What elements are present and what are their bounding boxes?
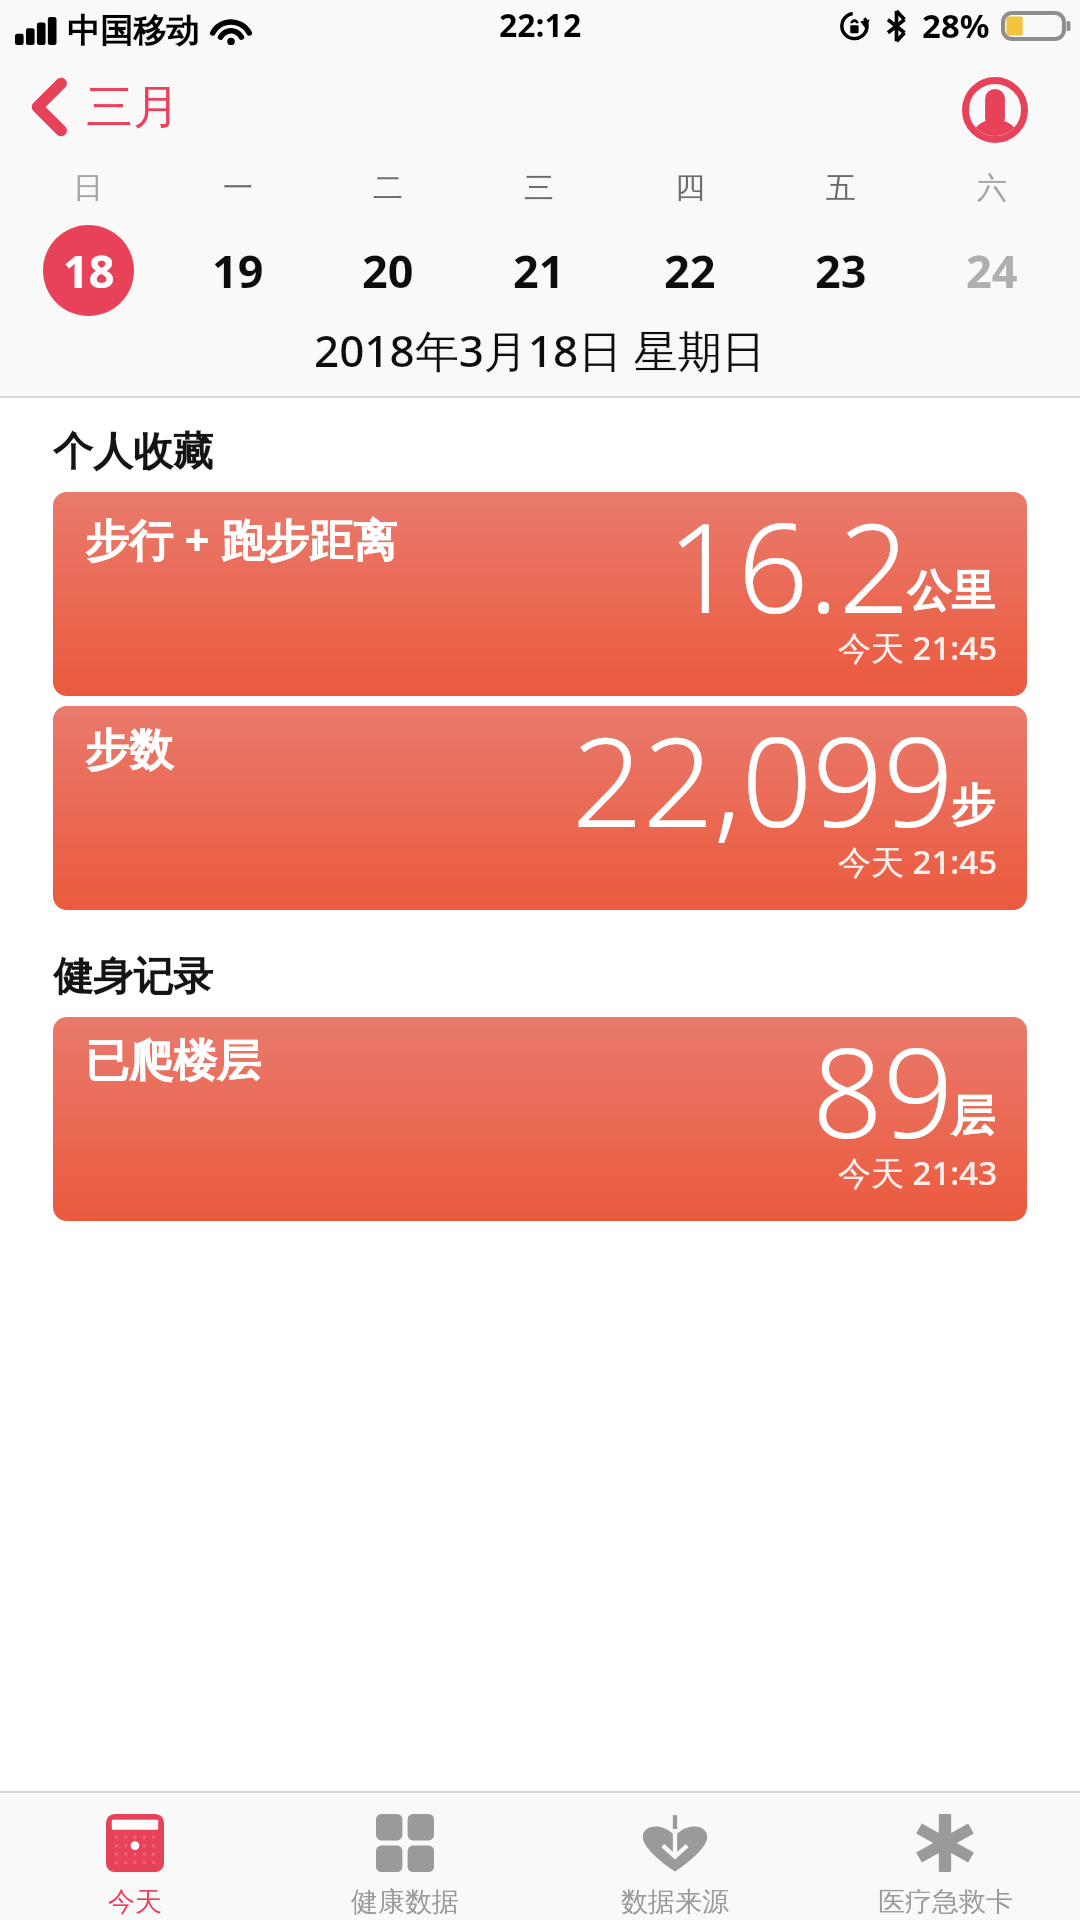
button[interactable]: 数据来源 <box>540 1793 810 1920</box>
button[interactable]: 21 <box>463 222 614 318</box>
staticText: 22 <box>664 240 716 301</box>
button[interactable]: 20 <box>313 222 463 318</box>
staticText: 89 <box>812 1017 954 1174</box>
staticText: 日 <box>73 169 103 207</box>
button[interactable]: 个人资料 <box>947 62 1043 158</box>
staticText: 步数 <box>85 723 173 778</box>
staticText: 18 <box>63 240 115 301</box>
staticText: 六 <box>977 169 1007 207</box>
staticText: 中国移动 <box>67 10 199 52</box>
staticText: 一 <box>223 169 253 207</box>
staticText: 28% <box>922 3 990 48</box>
staticText: 四 <box>675 169 705 207</box>
button[interactable]: 22 <box>614 222 765 318</box>
button[interactable]: 19 <box>163 222 313 318</box>
staticText: 医疗急救卡 <box>878 1885 1013 1919</box>
button[interactable]: 23 <box>765 222 916 318</box>
staticText: 五 <box>826 169 856 207</box>
staticText: 步行 + 跑步距离 <box>85 509 398 569</box>
staticText: 2018年3月18日 星期日 <box>314 320 766 374</box>
staticText: 健身记录 <box>53 951 213 1001</box>
staticText: 今天 21:43 <box>838 1150 998 1195</box>
staticText: 已爬楼层 <box>85 1034 261 1089</box>
button[interactable]: 24 <box>916 222 1067 318</box>
staticText: 24 <box>966 240 1018 301</box>
staticText: 22:12 <box>499 3 582 47</box>
staticText: 步 <box>951 778 995 833</box>
staticText: 16.2 <box>667 492 910 649</box>
staticText: 三月 <box>86 78 180 137</box>
staticText: 21 <box>513 240 565 301</box>
button[interactable]: 已爬楼层 <box>53 1017 1027 1221</box>
staticText: 今天 21:45 <box>838 839 998 884</box>
staticText: 个人收藏 <box>53 426 213 476</box>
button[interactable]: 健康数据 <box>270 1793 540 1920</box>
staticText: 三 <box>524 169 554 207</box>
staticText: 19 <box>212 240 264 301</box>
button[interactable]: 三月 <box>0 70 200 144</box>
staticText: 公里 <box>907 564 995 619</box>
staticText: 20 <box>362 240 414 301</box>
staticText: 今天 21:45 <box>838 625 998 670</box>
button[interactable]: 步行 + 跑步距离 <box>53 492 1027 696</box>
button[interactable]: 步数 <box>53 706 1027 910</box>
staticText: 健康数据 <box>351 1885 459 1919</box>
staticText: 数据来源 <box>621 1885 729 1919</box>
button[interactable]: 18 <box>13 222 163 318</box>
button[interactable]: 医疗急救卡 <box>810 1793 1080 1920</box>
staticText: 22,099 <box>572 706 954 863</box>
staticText: 23 <box>815 240 867 301</box>
button[interactable]: 今天 <box>0 1793 270 1920</box>
staticText: 层 <box>951 1089 995 1144</box>
staticText: 二 <box>373 169 403 207</box>
staticText: 今天 <box>108 1885 162 1919</box>
